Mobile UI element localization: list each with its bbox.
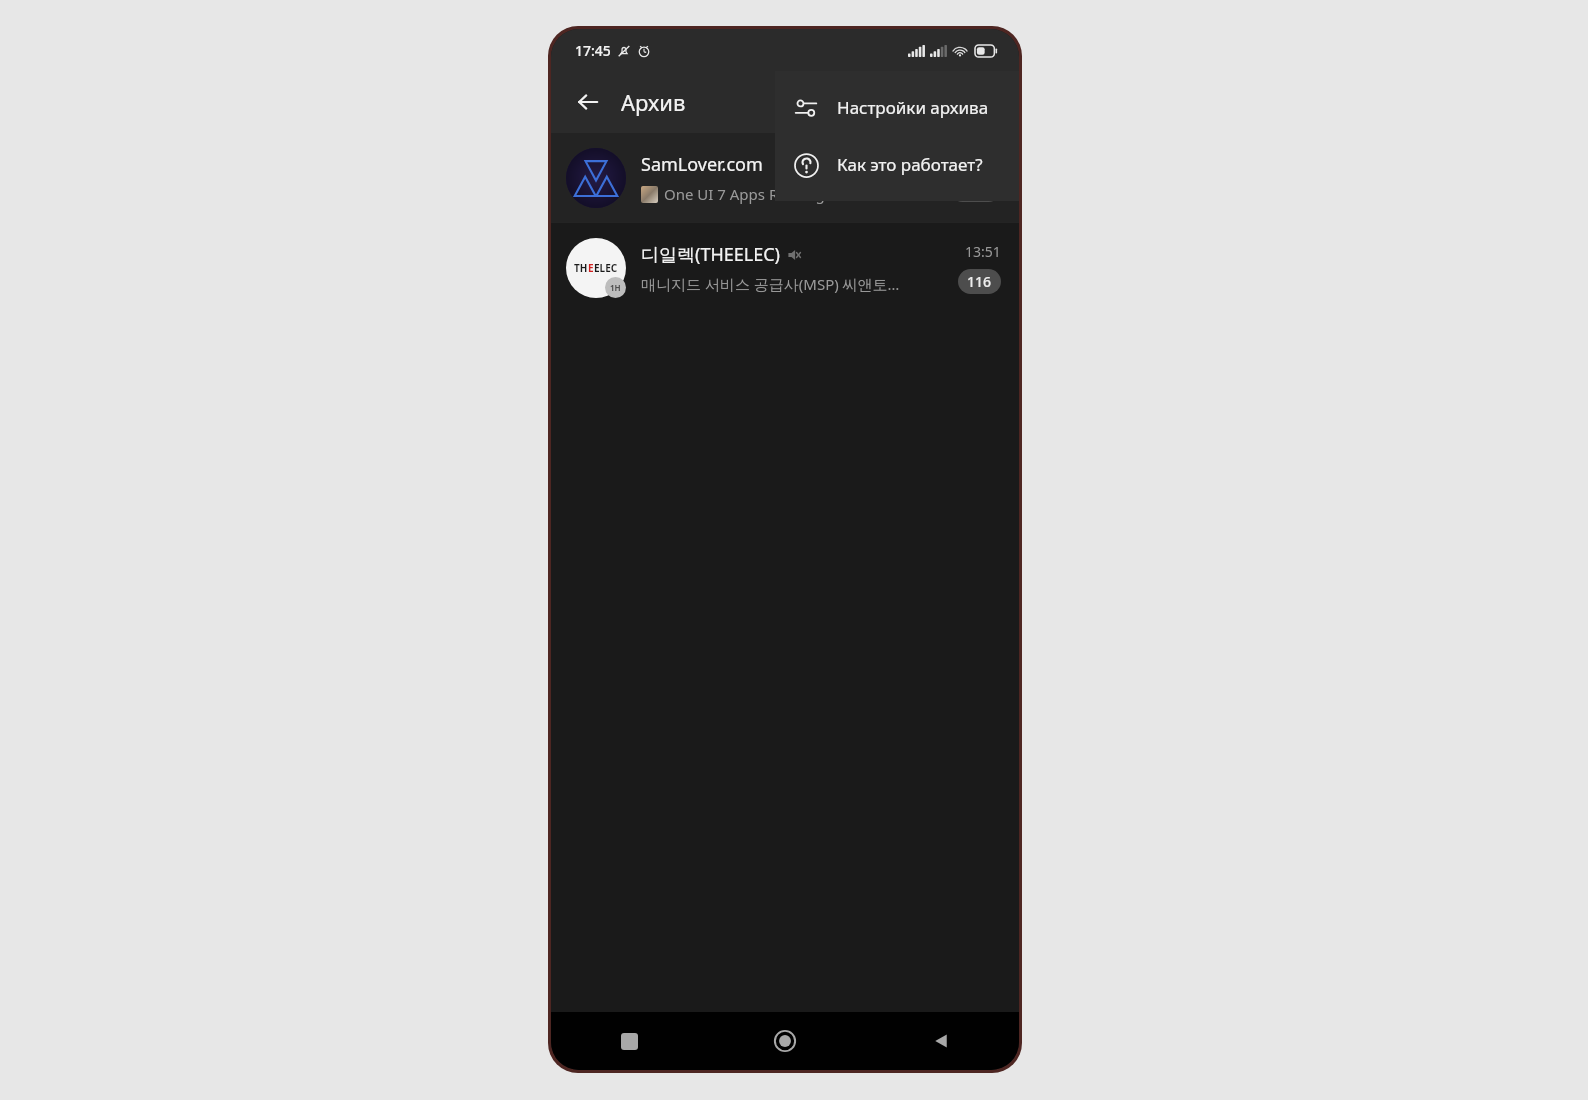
button[interactable]: Home	[707, 1012, 863, 1070]
button[interactable]: Как это работает?	[775, 136, 1019, 193]
staticText: 17:45	[575, 41, 611, 60]
staticText: One UI 7 Apps Redesign Surfaces…	[664, 184, 910, 204]
button[interactable]: TH	[551, 223, 1019, 312]
staticText: 디일렉(THEELEC)	[641, 242, 780, 267]
staticText: Настройки архива	[837, 96, 989, 119]
staticText: 13:51	[965, 242, 1001, 261]
staticText: ELEC	[594, 261, 618, 275]
staticText: Как это работает?	[837, 153, 983, 176]
staticText: TH	[574, 261, 588, 275]
button[interactable]: Recents	[551, 1012, 707, 1070]
button[interactable]: SamLover.com	[551, 133, 1019, 222]
staticText: 1H	[610, 282, 621, 293]
button[interactable]: Back	[565, 79, 611, 125]
staticText: SamLover.com	[641, 152, 763, 177]
staticText: Архив	[621, 87, 686, 117]
staticText: 매니지드 서비스 공급사(MSP) 씨앤토…	[641, 274, 900, 294]
button[interactable]: Back	[863, 1012, 1019, 1070]
staticText: E	[588, 261, 594, 275]
staticText: 116	[967, 272, 992, 291]
button[interactable]: Настройки архива	[775, 79, 1019, 136]
